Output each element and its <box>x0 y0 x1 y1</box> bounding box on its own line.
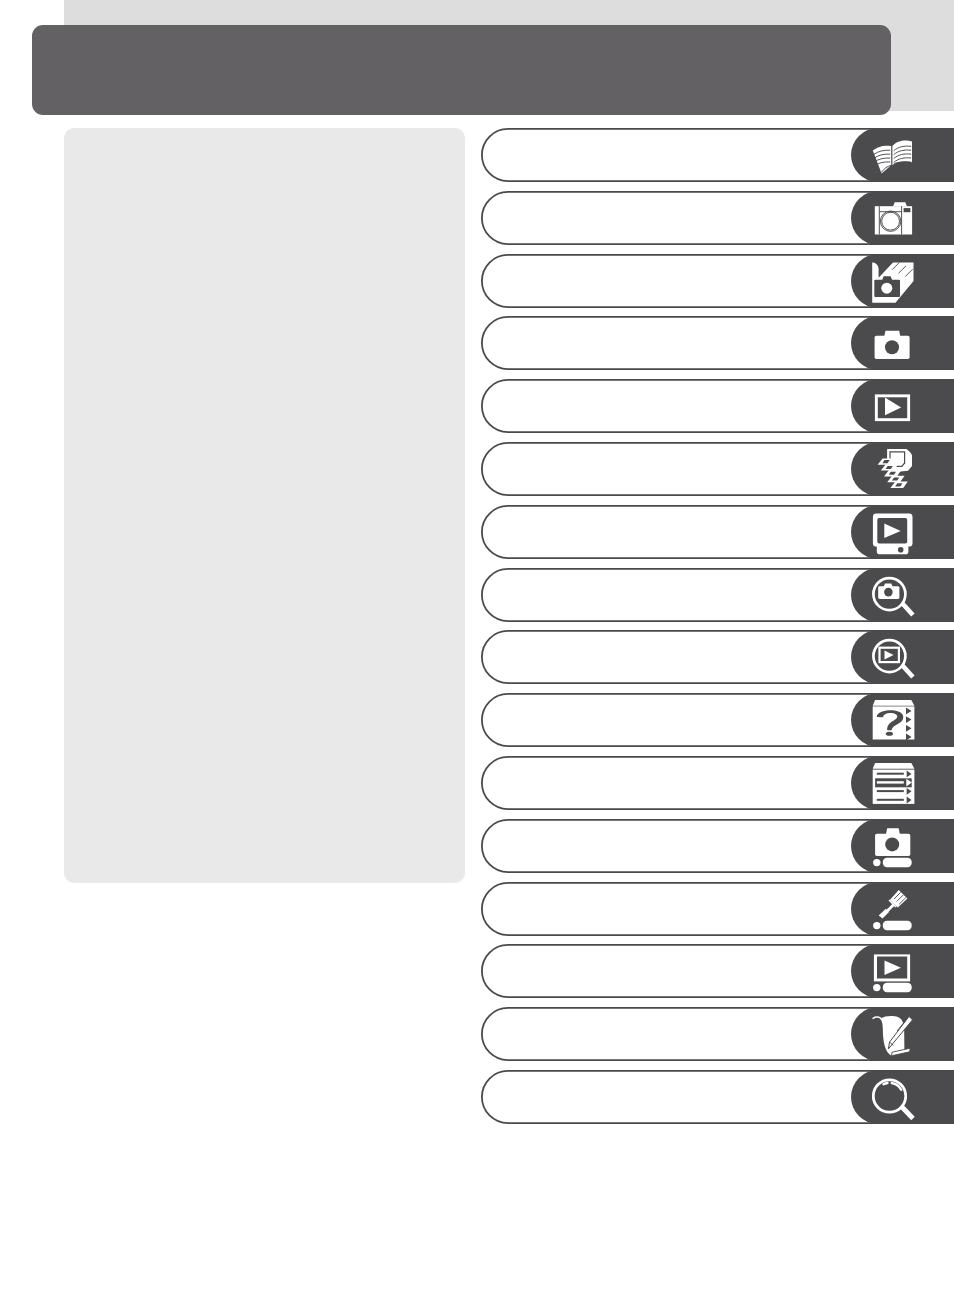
button[interactable]: Notes <box>481 1007 954 1061</box>
button[interactable]: Camera parts <box>481 191 954 245</box>
button[interactable]: Play movies <box>481 379 954 433</box>
button[interactable]: Index search <box>481 1070 954 1124</box>
button[interactable]: View on TV <box>481 505 954 559</box>
button[interactable]: Take photos <box>481 316 954 370</box>
button[interactable]: Tools settings list <box>481 882 954 936</box>
button[interactable]: Search movies <box>481 630 954 684</box>
button[interactable]: Menu list <box>481 756 954 810</box>
button[interactable]: Title bar <box>32 25 891 115</box>
button[interactable]: Camera settings list <box>481 819 954 873</box>
button[interactable]: Playback settings list <box>481 944 954 998</box>
button[interactable]: Read this first <box>481 128 954 182</box>
button[interactable]: Help index <box>481 693 954 747</box>
button[interactable]: Shooting <box>481 254 954 308</box>
button[interactable]: Transfer to computer <box>481 442 954 496</box>
button[interactable]: Search photos <box>481 568 954 622</box>
